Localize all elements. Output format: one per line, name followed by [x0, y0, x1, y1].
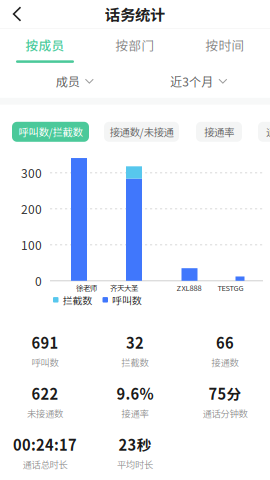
- staticText: 622: [31, 383, 58, 404]
- staticText: 接通率: [204, 124, 234, 139]
- staticText: 300: [21, 164, 42, 181]
- staticText: 近3个月: [170, 73, 213, 90]
- staticText: 拦截数: [62, 293, 92, 307]
- button[interactable]: 按成员: [0, 29, 90, 65]
- staticText: ZXL888: [176, 282, 201, 293]
- staticText: 66: [216, 332, 234, 353]
- staticText: 9.6%: [116, 383, 153, 404]
- button[interactable]: 接通率: [196, 105, 242, 147]
- staticText: 75分: [208, 383, 241, 404]
- staticText: 呼叫数: [31, 355, 58, 369]
- staticText: 691: [31, 332, 58, 353]
- staticText: 32: [126, 332, 144, 353]
- staticText: 呼叫数/拦截数: [18, 124, 82, 139]
- staticText: 按成员: [25, 36, 64, 54]
- staticText: 未接通数: [27, 406, 63, 420]
- staticText: 通话分钟数: [202, 406, 247, 420]
- staticText: 接通数: [211, 355, 238, 369]
- button[interactable]: 接通数/未接通: [104, 105, 179, 147]
- staticText: 呼叫数: [112, 293, 142, 307]
- button[interactable]: 通话时长: [258, 105, 270, 147]
- button[interactable]: 近3个月: [150, 65, 248, 98]
- staticText: 23秒: [118, 434, 151, 455]
- staticText: 0: [35, 272, 42, 289]
- button[interactable]: 呼叫数/拦截数: [12, 105, 89, 147]
- button[interactable]: 按部门: [90, 29, 180, 65]
- button[interactable]: Back: [0, 0, 34, 28]
- button[interactable]: 成员: [0, 65, 150, 98]
- staticText: 徐老师: [76, 282, 97, 293]
- staticText: 平均时长: [117, 457, 153, 471]
- staticText: 200: [21, 200, 42, 217]
- staticText: 00:24:17: [13, 434, 77, 455]
- staticText: 通话总时长: [22, 457, 67, 471]
- staticText: 齐天大圣: [110, 282, 138, 293]
- staticText: 接通数/未接通: [109, 124, 173, 139]
- staticText: 按时间: [205, 36, 244, 54]
- staticText: 按部门: [115, 36, 154, 54]
- button[interactable]: 按时间: [180, 29, 270, 65]
- staticText: 接通率: [121, 406, 148, 420]
- staticText: TESTGG: [217, 282, 243, 293]
- staticText: 通话时长: [266, 124, 270, 139]
- staticText: 话务统计: [105, 3, 165, 25]
- staticText: 成员: [56, 73, 80, 90]
- staticText: 100: [21, 236, 42, 253]
- staticText: 拦截数: [121, 355, 148, 369]
